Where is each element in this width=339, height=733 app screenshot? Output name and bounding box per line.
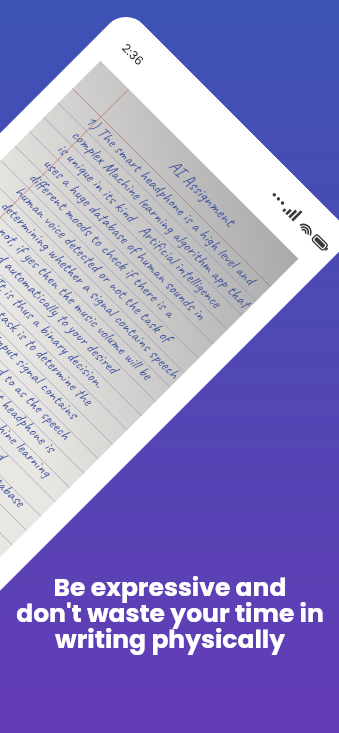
staticText: determining whether a signal contains sp… (0, 196, 185, 384)
staticText: uses a huge database of human sounds in (39, 153, 211, 325)
staticText: speech this is referred to as the speech (0, 281, 76, 445)
staticText: a high level and complex Machine learnin… (0, 309, 56, 482)
staticText: is unique in its kind Artificial intelli… (53, 139, 226, 312)
staticText: Artificial intelligence uses a huge data… (0, 337, 30, 512)
staticText: 1) The smart headphone is a high level a… (81, 111, 259, 289)
staticText: or not, if yes then the music volume wil… (0, 210, 157, 385)
staticText: complex Machine learning algorithm app t… (67, 125, 255, 312)
staticText: relation. It is thus a binary decision. (0, 238, 108, 392)
staticText: human voice detected or not the task of (11, 182, 176, 347)
staticText: 2:36 (118, 40, 148, 69)
staticText: app that is very unique in its kind (0, 323, 11, 465)
staticText: different moods to check if there is a (25, 167, 180, 322)
staticText: AI Assignment (165, 155, 240, 231)
staticText: given time of an input signal contains (0, 266, 83, 423)
staticText: reduced automatically to your desired (0, 224, 123, 379)
staticText: detection task The smart headphone is (0, 295, 60, 457)
staticText: 2) Hence the task is to determine the (0, 252, 98, 410)
staticText: Be expressive and don't waste your time … (16, 570, 324, 657)
